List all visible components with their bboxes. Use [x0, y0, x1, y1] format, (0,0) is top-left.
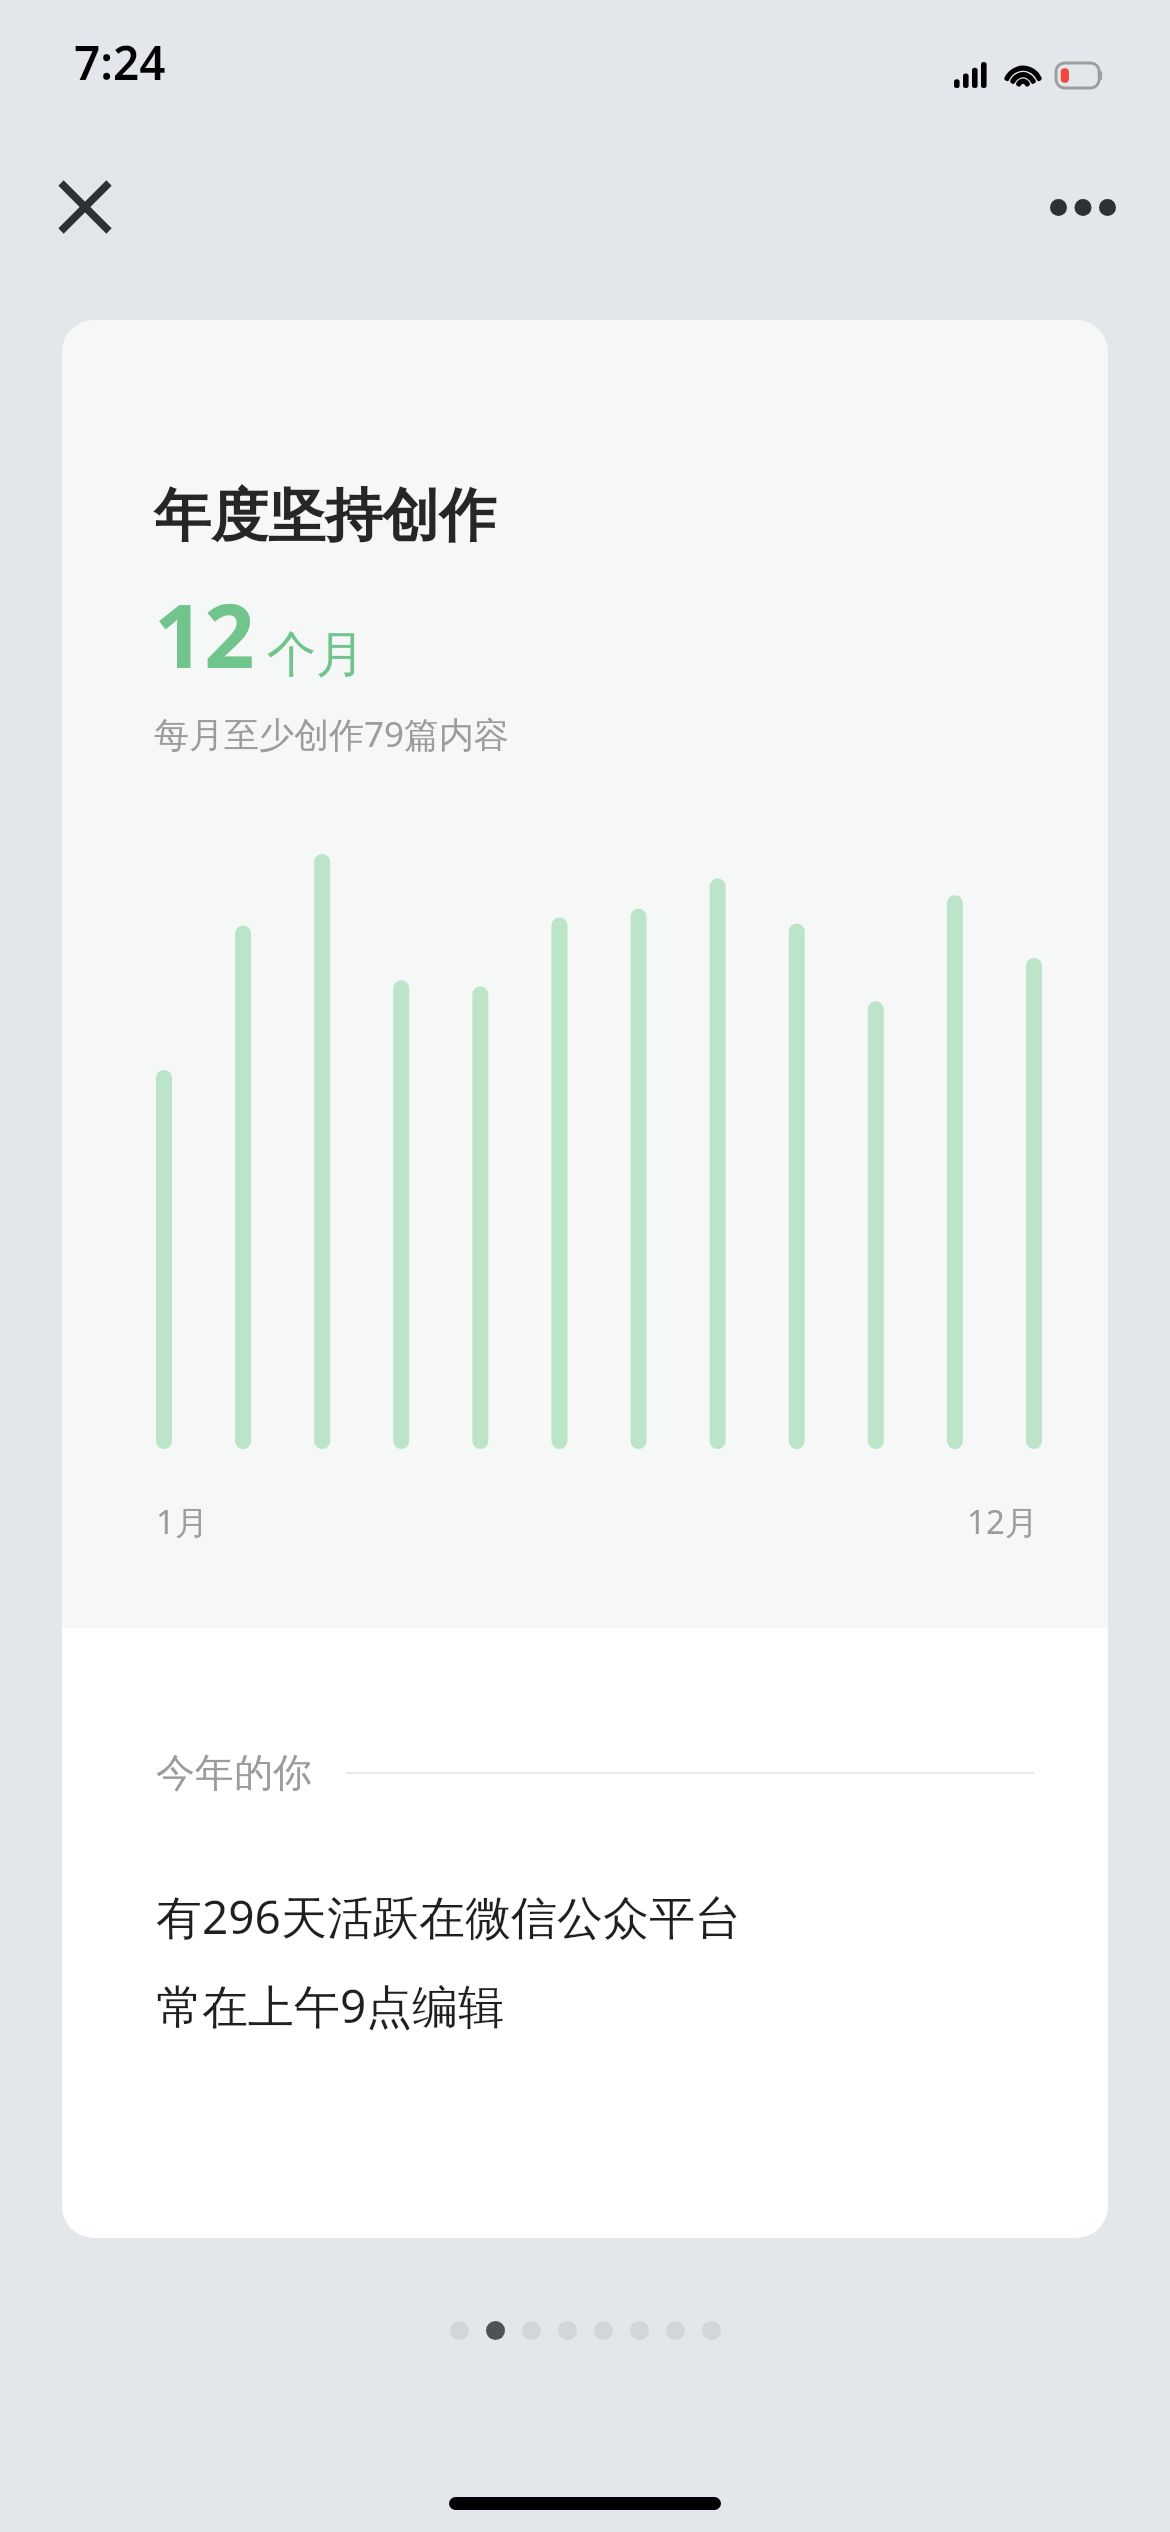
button[interactable] — [450, 2321, 469, 2340]
staticText: 12月 — [967, 1499, 1038, 1544]
button[interactable] — [630, 2321, 649, 2340]
staticText: 常在上午9点编辑 — [156, 1974, 505, 2037]
button[interactable]: 年度坚持创作 — [62, 320, 1108, 2238]
button[interactable]: Close — [38, 160, 132, 254]
button[interactable] — [558, 2321, 577, 2340]
staticText: 个月 — [267, 624, 365, 686]
button[interactable] — [522, 2321, 541, 2340]
staticText: 年度坚持创作 — [154, 480, 496, 552]
staticText: 7:24 — [74, 31, 166, 94]
staticText: 有296天活跃在微信公众平台 — [156, 1885, 741, 1948]
button[interactable] — [594, 2321, 613, 2340]
button[interactable] — [486, 2321, 505, 2340]
staticText: 1月 — [156, 1499, 208, 1544]
button[interactable] — [702, 2321, 721, 2340]
button[interactable] — [666, 2321, 685, 2340]
button[interactable]: More options — [1028, 164, 1138, 250]
staticText: 每月至少创作79篇内容 — [154, 710, 510, 758]
staticText: 今年的你 — [156, 1748, 312, 1797]
staticText: 12 — [154, 574, 255, 694]
